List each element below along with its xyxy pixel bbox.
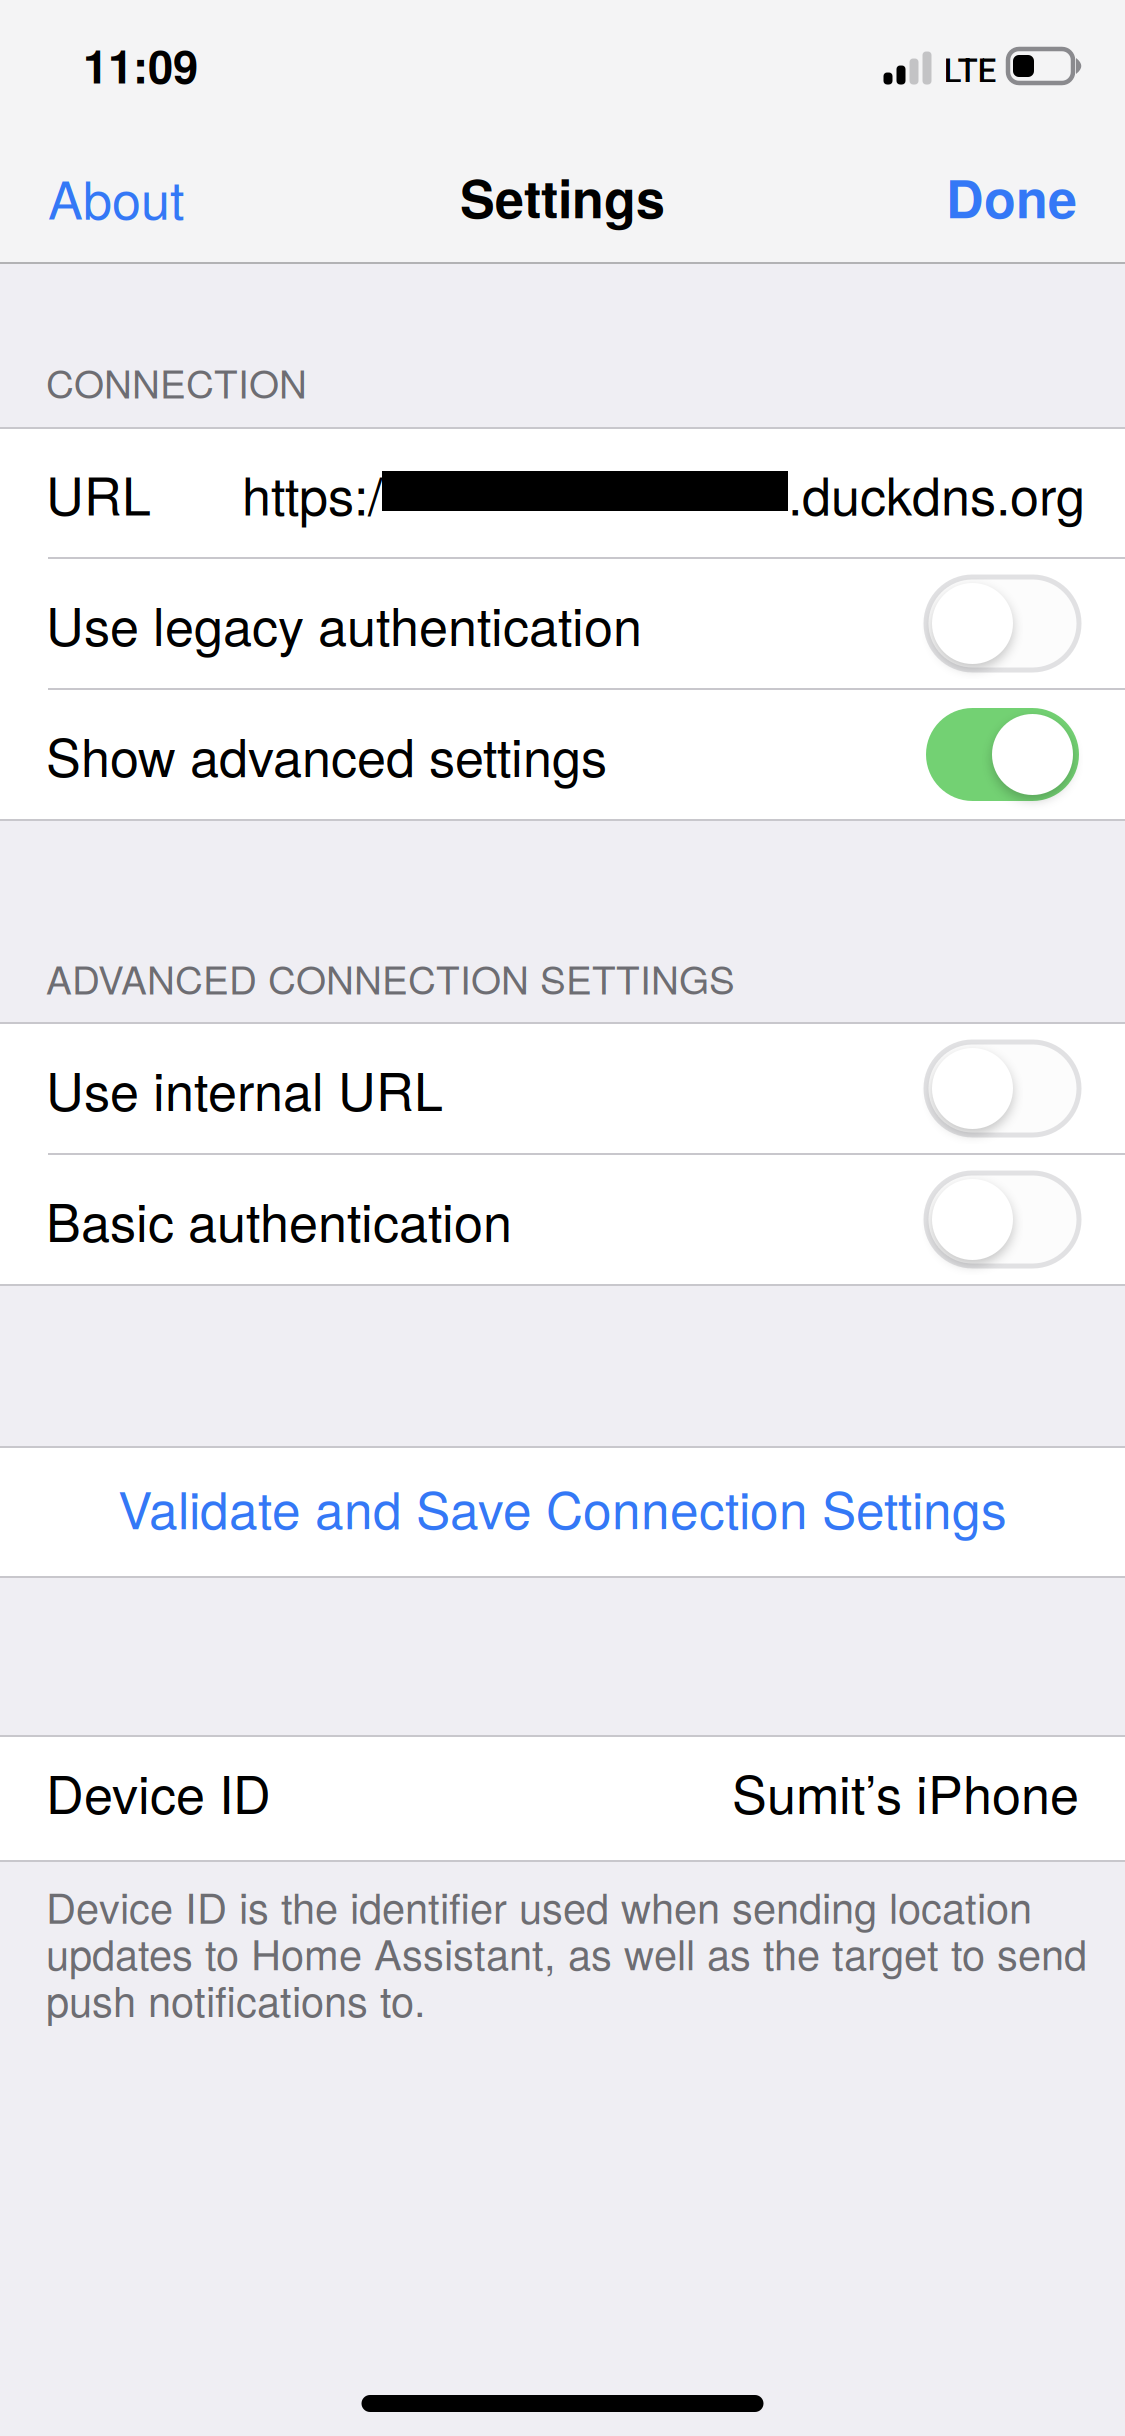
staticText: Validate and Save Connection Settings: [118, 1470, 1007, 1544]
staticText: 11:09: [83, 32, 198, 97]
staticText: push notifications to.: [46, 1969, 426, 2029]
staticText: .duckdns.org: [788, 456, 1085, 530]
staticText: https:/: [242, 456, 382, 530]
staticText: Device ID: [46, 1754, 271, 1829]
staticText: updates to Home Assistant, as well as th…: [46, 1923, 1087, 1982]
staticText: Settings: [460, 160, 665, 234]
staticText: Done: [946, 160, 1077, 234]
staticText: Show advanced settings: [46, 717, 607, 792]
button[interactable]: Done: [898, 132, 1125, 262]
staticText: Use internal URL: [46, 1051, 443, 1126]
staticText: ADVANCED CONNECTION SETTINGS: [46, 950, 735, 1005]
button[interactable]: Show advanced settings: [0, 690, 1125, 819]
button[interactable]: URL: [0, 429, 1125, 557]
button[interactable]: Use legacy authentication: [0, 559, 1125, 688]
button[interactable]: Validate and Save Connection Settings: [0, 1448, 1125, 1576]
button[interactable]: Device ID: [0, 1737, 1125, 1860]
button[interactable]: Basic authentication: [0, 1155, 1125, 1284]
staticText: LTE: [943, 51, 996, 91]
staticText: Basic authentication: [46, 1182, 512, 1257]
staticText: Use legacy authentication: [46, 586, 642, 661]
staticText: CONNECTION: [46, 354, 307, 409]
staticText: URL: [46, 456, 151, 530]
staticText: Device ID is the identifier used when se…: [46, 1876, 1032, 1936]
button[interactable]: About: [0, 132, 232, 262]
staticText: About: [48, 160, 184, 234]
staticText: Sumit’s iPhone: [732, 1754, 1079, 1829]
button[interactable]: Use internal URL: [0, 1024, 1125, 1153]
